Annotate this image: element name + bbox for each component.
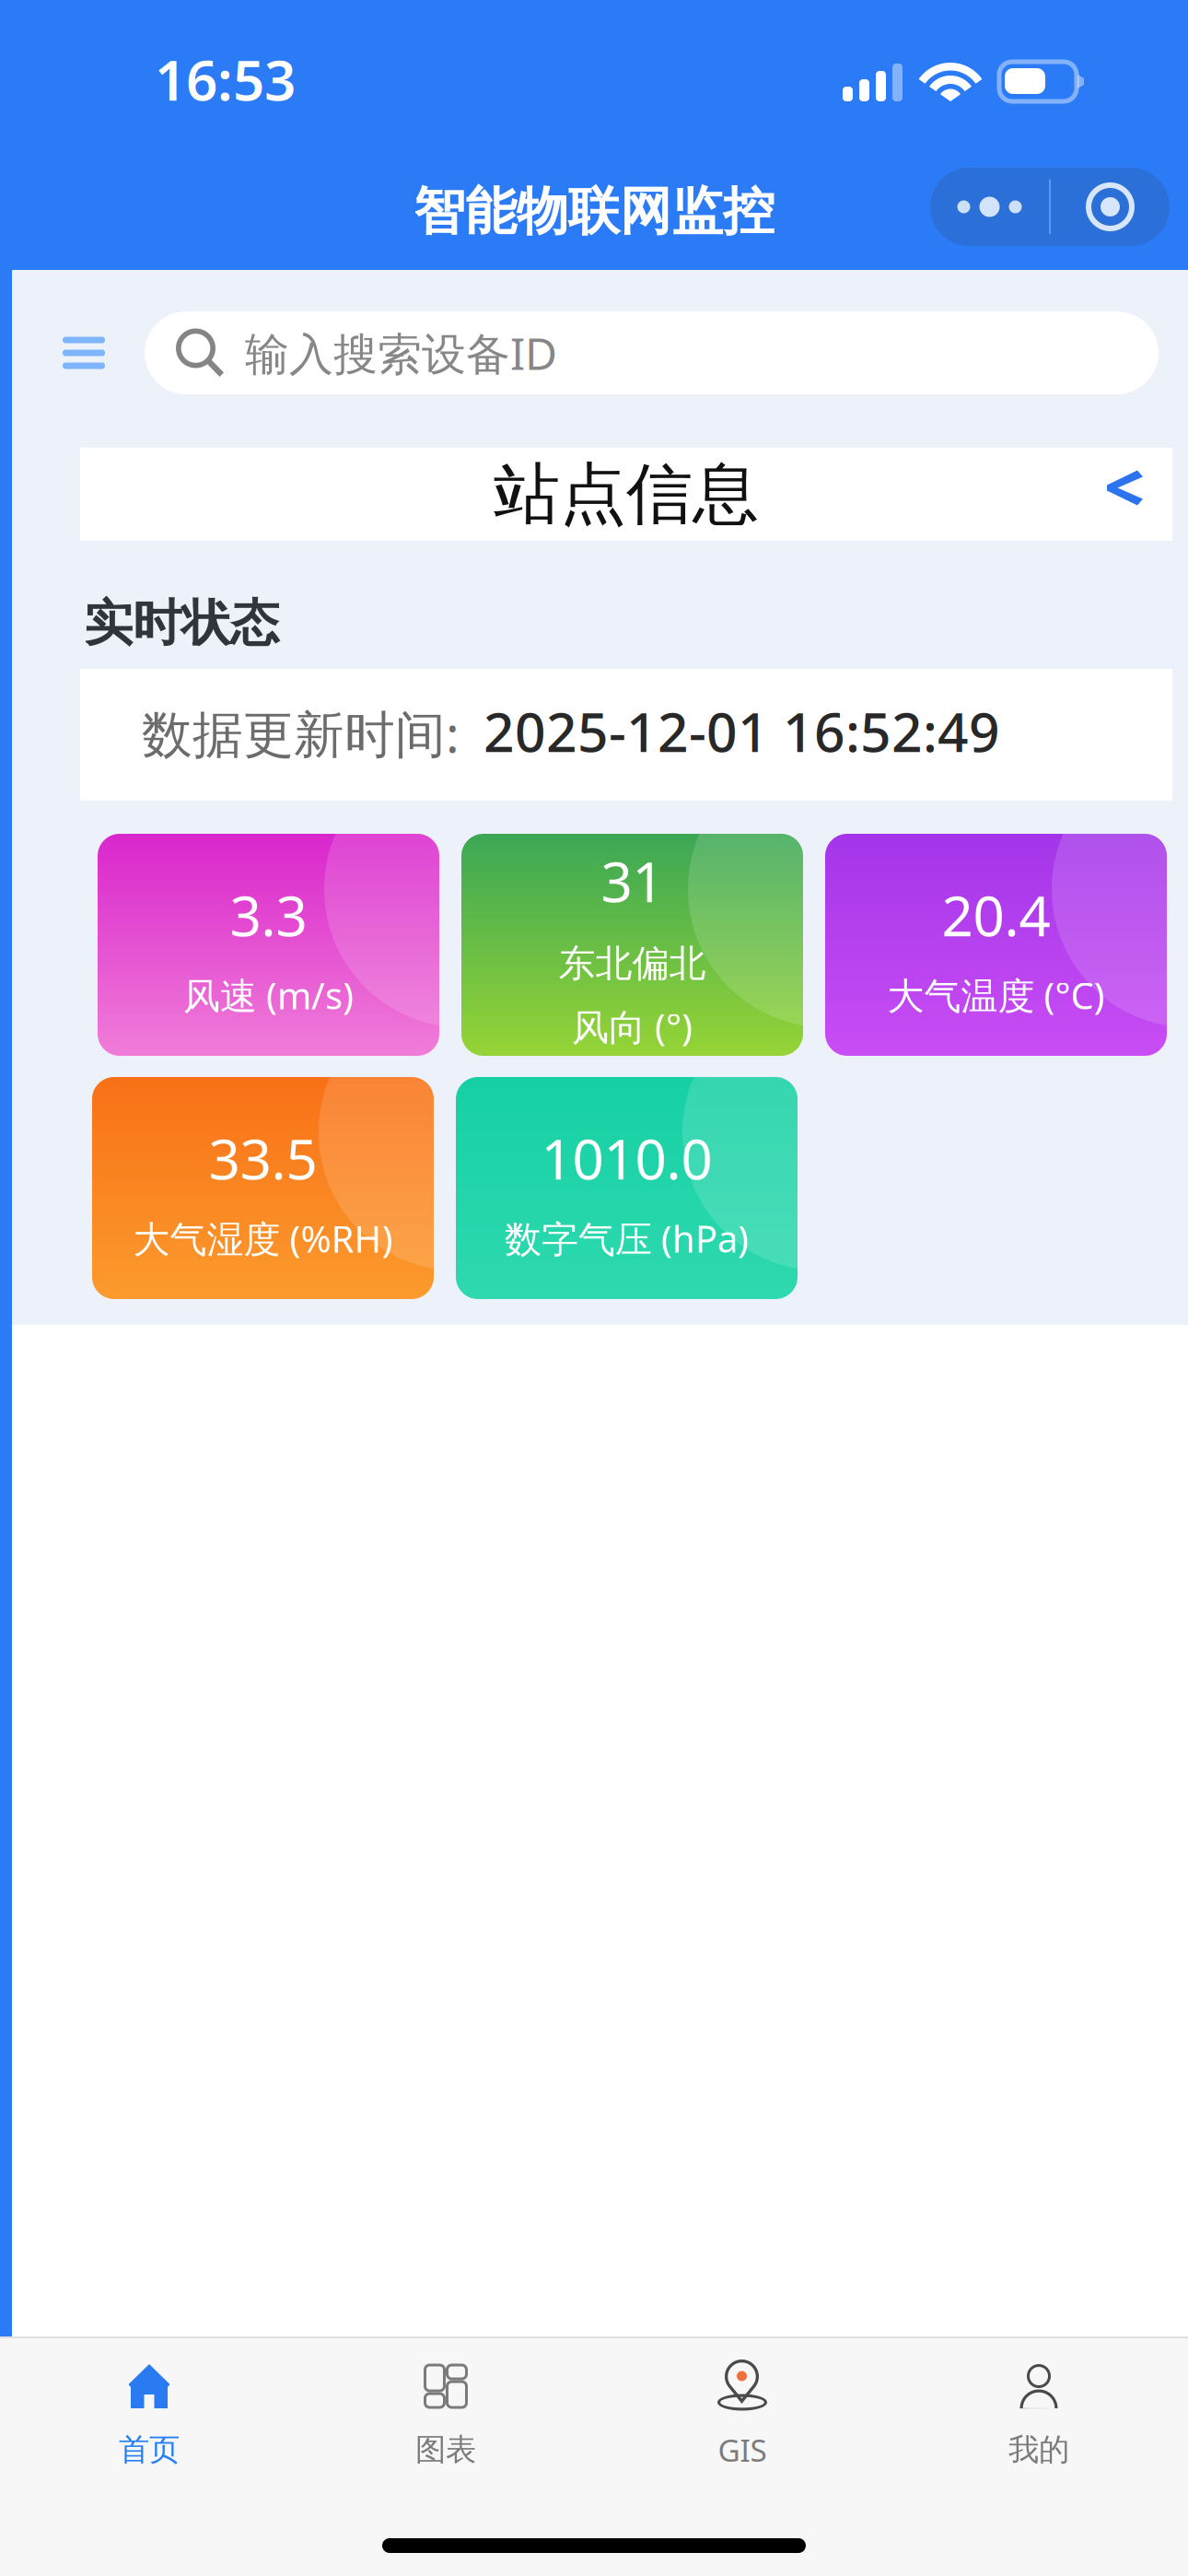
button[interactable]: More (930, 168, 1049, 246)
staticText: 大气湿度 (%RH) (133, 1214, 393, 1263)
staticText: 大气温度 (°C) (887, 971, 1105, 1019)
staticText: 31 (601, 844, 664, 918)
staticText: 智能物联网监控 (413, 180, 775, 243)
staticText: 20.4 (942, 878, 1050, 952)
staticText: 实时状态 (84, 593, 279, 653)
staticText: 风向 (°) (572, 1002, 693, 1051)
staticText: 东北偏北 (559, 941, 706, 986)
staticText: 数据更新时间: (142, 700, 460, 767)
staticText: 图表 (415, 2431, 476, 2469)
staticText: 输入搜索设备ID (245, 323, 557, 382)
staticText: 2025-12-01 16:52:49 (483, 695, 1000, 767)
button[interactable]: Close (1051, 168, 1170, 246)
staticText: 风速 (m/s) (183, 971, 354, 1019)
staticText: 16:53 (155, 43, 296, 116)
staticText: 首页 (119, 2431, 180, 2469)
button[interactable]: GIS (594, 2338, 891, 2486)
button[interactable]: 我的 (891, 2338, 1187, 2486)
staticText: 数字气压 (hPa) (505, 1214, 749, 1263)
staticText: GIS (718, 2429, 767, 2470)
button[interactable]: 图表 (297, 2338, 594, 2486)
staticText: 33.5 (209, 1121, 317, 1195)
button[interactable]: 首页 (1, 2338, 297, 2486)
button[interactable]: Menu (24, 311, 145, 394)
staticText: 站点信息 (494, 454, 759, 535)
staticText: 3.3 (230, 878, 307, 952)
staticText: 1010.0 (541, 1121, 712, 1195)
button[interactable]: 输入搜索设备ID (145, 311, 1159, 394)
button[interactable]: Back (1087, 448, 1163, 541)
staticText: 我的 (1008, 2431, 1069, 2469)
